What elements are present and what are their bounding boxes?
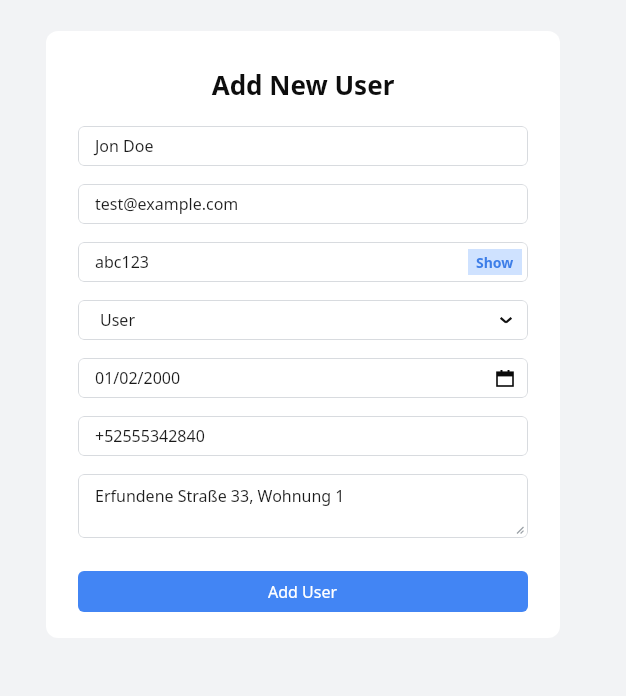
staticText: test@example.com	[95, 193, 239, 215]
staticText: 01/02/2000	[95, 367, 181, 389]
button[interactable]: Erfundene Straße 33, Wohnung 1	[78, 474, 528, 538]
staticText: Show	[476, 253, 514, 272]
staticText: +52555342840	[95, 425, 205, 447]
button[interactable]: abc123	[78, 242, 528, 282]
other: Open role dropdown	[496, 310, 516, 330]
staticText: abc123	[95, 251, 149, 273]
staticText: Add User	[268, 581, 338, 603]
button[interactable]: Pick a date	[494, 367, 516, 389]
button[interactable]: Add User	[78, 571, 528, 612]
button[interactable]: Show	[468, 249, 522, 275]
button[interactable]: test@example.com	[78, 184, 528, 224]
button[interactable]: 01/02/2000	[78, 358, 528, 398]
button[interactable]: User	[78, 300, 528, 340]
staticText: Add New User	[78, 67, 528, 102]
button[interactable]: Jon Doe	[78, 126, 528, 166]
staticText: User	[100, 309, 135, 331]
button[interactable]: +52555342840	[78, 416, 528, 456]
staticText: Erfundene Straße 33, Wohnung 1	[95, 485, 345, 507]
staticText: Jon Doe	[95, 135, 154, 157]
